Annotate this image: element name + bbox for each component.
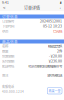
staticText: 状态	[2, 28, 8, 33]
staticText: 订单详情	[24, 5, 40, 11]
staticText: 配送地址	[2, 63, 14, 68]
staticText: 已完成	[53, 28, 62, 33]
staticText: <	[3, 5, 5, 11]
staticText: 05-12 10:23	[43, 23, 62, 28]
staticText: 请尽快配送	[47, 72, 62, 77]
staticText: 精选套餐A	[48, 43, 62, 48]
staticText: 下单时间	[2, 23, 14, 28]
staticText: 优惠金额	[2, 53, 14, 58]
staticText: 实付金额	[2, 58, 14, 63]
button[interactable]: Share	[1, 5, 6, 11]
staticText: 备注	[2, 72, 8, 77]
staticText: 名称	[2, 43, 8, 48]
staticText: 数量	[2, 48, 8, 53]
staticText: 20240512001	[40, 18, 62, 23]
staticText: 订单信息	[2, 14, 18, 19]
staticText: 再来一单	[49, 89, 61, 93]
staticText: ￥236.00	[48, 58, 62, 63]
staticText: 订单编号	[2, 18, 14, 23]
staticText: •••	[58, 0, 61, 16]
staticText: 9:41	[2, 0, 9, 5]
staticText: -￥20.00	[49, 53, 62, 58]
button[interactable]: 再来一单	[47, 88, 62, 94]
staticText: 400-000-1234	[2, 90, 24, 94]
staticText: 商品信息	[2, 39, 18, 44]
staticText: ▮	[60, 1, 62, 4]
staticText: 客服电话	[2, 84, 14, 89]
staticText: 2件	[57, 48, 62, 53]
staticText: 北京市朝阳区建国路88号	[28, 63, 62, 68]
button[interactable]: More	[57, 5, 62, 11]
